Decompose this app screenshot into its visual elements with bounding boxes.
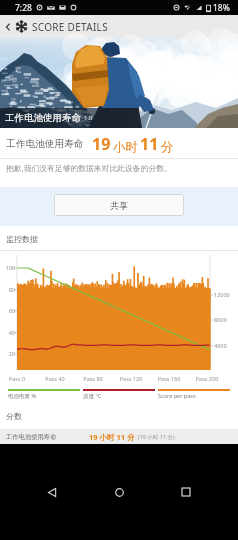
staticText: Pass 0 (2, 375, 32, 382)
staticText: 11 (140, 133, 159, 155)
button[interactable]: Back (0, 15, 15, 38)
staticText: 监控数据 (6, 234, 38, 244)
staticText: 电池电量 % (8, 392, 37, 400)
staticText: Pass 160 (154, 375, 184, 382)
staticText: 12000 (214, 291, 230, 298)
staticText: SCORE DETAILS (32, 20, 108, 34)
staticText: 18% (213, 2, 230, 14)
staticText: (19 小时 11 分) (138, 433, 175, 441)
staticText: Pass 80 (78, 375, 108, 382)
button[interactable]: Home (104, 477, 134, 507)
staticText: 工作电池使用寿命 (6, 138, 84, 150)
button[interactable]: 共享 (54, 194, 184, 216)
button[interactable]: 温度 °C (83, 389, 155, 400)
button[interactable]: 电池电量 % (8, 389, 80, 400)
staticText: 80 (1, 286, 15, 293)
staticText: Pass 120 (116, 375, 146, 382)
staticText: 1.0 (84, 114, 93, 122)
button[interactable]: Recents (171, 477, 201, 507)
staticText: 工作电池使用寿命 (5, 112, 81, 124)
staticText: 小时 (113, 139, 138, 155)
staticText: Pass 40 (40, 375, 70, 382)
staticText: Score per pass (158, 392, 196, 399)
staticText: 共享 (110, 200, 128, 211)
button[interactable]: Back (37, 477, 67, 507)
button[interactable]: 工作电池使用寿命 (6, 429, 238, 444)
staticText: 19 (92, 133, 111, 155)
staticText: 抱歉,我们没有足够的数据来对比此设备的分数。 (6, 163, 172, 174)
staticText: 60 (1, 307, 15, 314)
staticText: 19 小时 11 分 (89, 432, 135, 442)
staticText: 温度 °C (83, 392, 102, 400)
staticText: 分数 (6, 411, 22, 421)
button[interactable]: Score per pass (158, 389, 230, 399)
staticText: 40 (1, 329, 15, 336)
staticText: 100 (1, 264, 15, 271)
staticText: 20 (1, 350, 15, 357)
staticText: 分 (161, 139, 174, 155)
staticText: 7:28 (15, 2, 32, 14)
staticText: Pass 200 (192, 375, 222, 382)
staticText: 工作电池使用寿命 (6, 433, 57, 441)
staticText: 8000 (214, 316, 227, 323)
staticText: 4000 (214, 342, 227, 349)
